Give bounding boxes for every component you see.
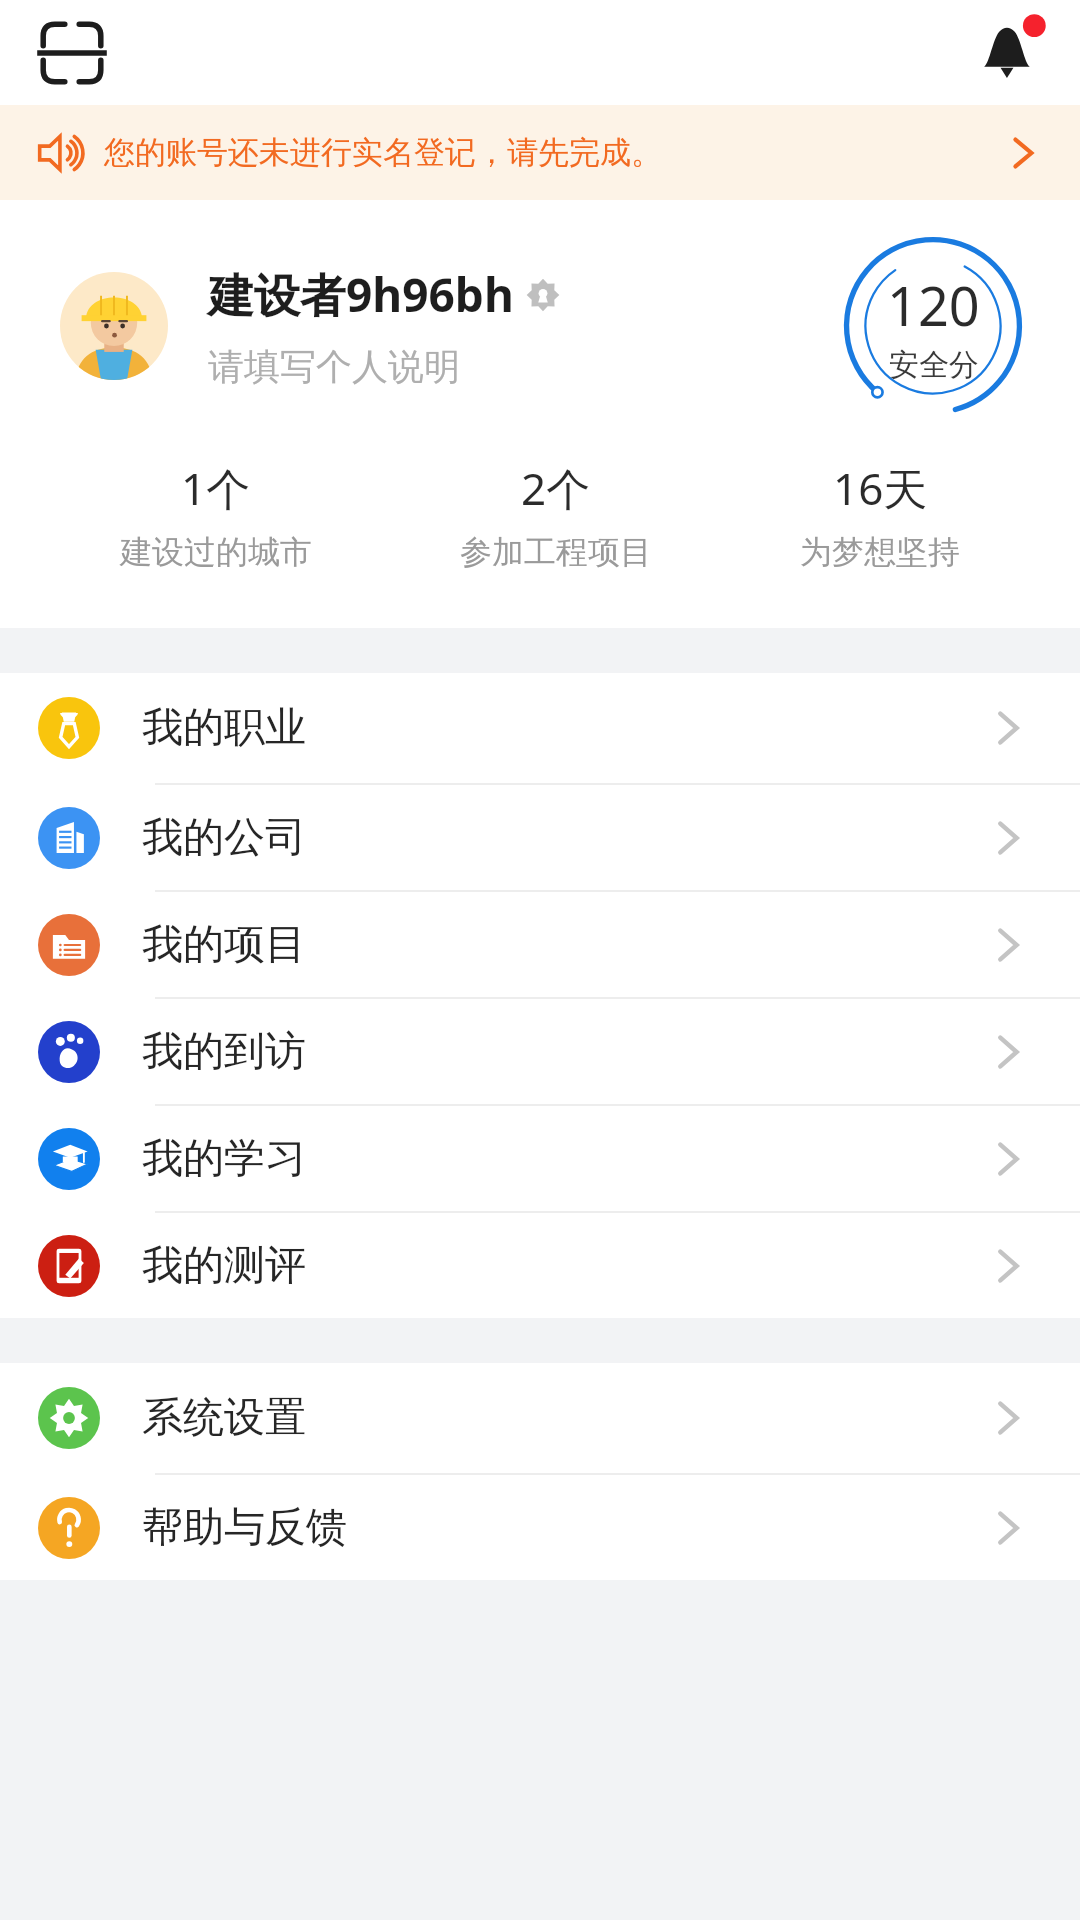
staticText: 为梦想坚持 [800,532,960,572]
button[interactable]: 您的账号还未进行实名登记，请先完成。 [0,105,1080,200]
button[interactable]: 我的学习 [0,1106,1080,1211]
staticText: 120 [887,268,980,342]
button[interactable]: 我的测评 [0,1213,1080,1318]
button[interactable]: 我的公司 [0,785,1080,890]
button[interactable]: 帮助与反馈 [0,1475,1080,1580]
staticText: 请填写个人说明 [208,344,460,389]
button[interactable]: 我的职业 [0,673,1080,783]
staticText: 我的职业 [142,702,306,754]
staticText: 建设过的城市 [120,532,312,572]
staticText: 我的学习 [142,1133,306,1185]
staticText: 帮助与反馈 [142,1502,347,1554]
button[interactable]: 16天 [772,452,988,578]
button[interactable]: 系统设置 [0,1363,1080,1473]
staticText: 我的到访 [142,1026,306,1078]
button[interactable]: Notifications [972,15,1048,91]
button[interactable]: Profile avatar [0,200,1080,452]
staticText: 我的测评 [142,1240,306,1292]
staticText: 您的账号还未进行实名登记，请先完成。 [104,133,662,172]
staticText: 参加工程项目 [460,532,652,572]
button[interactable]: 1个 [92,452,340,578]
button[interactable]: Scan QR code [36,17,108,89]
button[interactable]: 2个 [432,452,680,578]
button[interactable]: 我的项目 [0,892,1080,997]
staticText: 安全分 [889,346,979,384]
staticText: 1个 [181,458,251,518]
staticText: 我的公司 [142,812,306,864]
staticText: 我的项目 [142,919,306,971]
staticText: 16天 [833,458,928,518]
staticText: 系统设置 [142,1392,306,1444]
button[interactable]: 我的到访 [0,999,1080,1104]
button[interactable]: Profile avatar [60,272,168,380]
staticText: 2个 [521,458,591,518]
button[interactable]: 120 [838,231,1028,421]
staticText: 建设者9h96bh [208,263,514,326]
